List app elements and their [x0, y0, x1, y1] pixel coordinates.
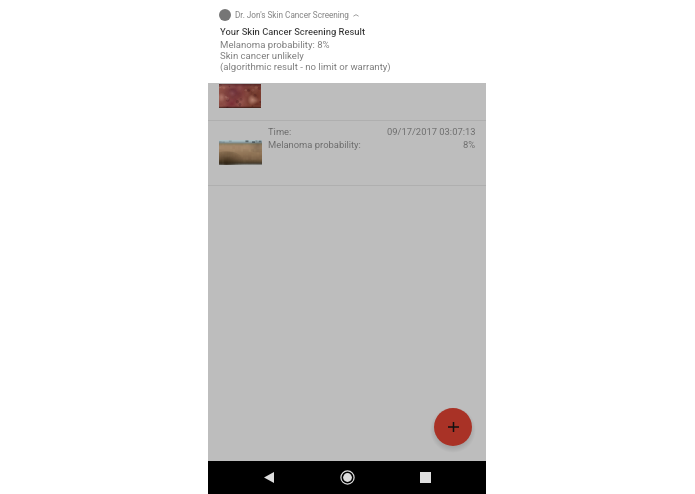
- button[interactable]: Dr. Jon's Skin Cancer Screening: [208, 0, 486, 83]
- button[interactable]: Recents: [399, 461, 451, 494]
- staticText: Dr. Jon's Skin Cancer Screening: [235, 10, 349, 20]
- staticText: (algorithmic result - no limit or warran…: [220, 61, 391, 72]
- button[interactable]: Home: [321, 461, 373, 494]
- button[interactable]: Add: [434, 408, 472, 446]
- button[interactable]: Back: [243, 461, 295, 494]
- staticText: Your Skin Cancer Screening Result: [220, 26, 366, 37]
- button[interactable]: Time:: [208, 121, 486, 185]
- other: Collapse: [353, 12, 359, 19]
- staticText: Skin cancer unlikely: [220, 50, 304, 61]
- staticText: Time:: [268, 126, 292, 137]
- staticText: Melanoma probability: 8%: [220, 39, 330, 50]
- button[interactable]: Dr. Jon's Skin Cancer Screening: [219, 9, 359, 21]
- staticText: Melanoma probability:: [268, 139, 361, 150]
- staticText: 8%: [463, 139, 476, 150]
- staticText: 09/17/2017 03:07:13: [387, 126, 476, 137]
- button[interactable]: [208, 83, 486, 120]
